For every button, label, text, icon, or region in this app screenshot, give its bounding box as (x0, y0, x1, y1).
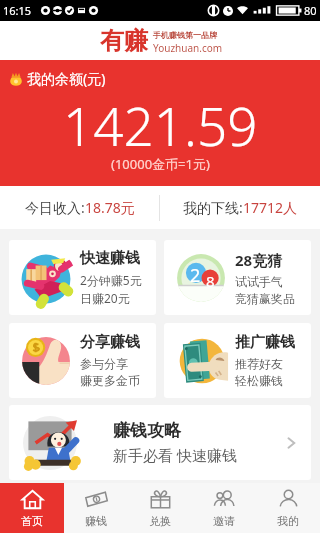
staticText: 日赚20元 (80, 290, 130, 306)
staticText: 推荐好友 (235, 356, 283, 371)
staticText: 2 (190, 263, 201, 288)
button[interactable]: 分享赚钱 (9, 323, 156, 398)
staticText: 8 (206, 271, 215, 291)
button[interactable]: 兑换 (128, 483, 192, 533)
staticText: 快速赚钱 (80, 249, 140, 268)
staticText: 分享赚钱 (80, 333, 140, 352)
staticText: 手机赚钱第一品牌 (153, 30, 217, 40)
staticText: 赚更多金币 (80, 373, 140, 388)
staticText: 有赚 (100, 26, 148, 56)
staticText: 竞猜赢奖品 (235, 291, 295, 306)
button[interactable]: 邀请 (192, 483, 256, 533)
button[interactable]: 首页 (0, 483, 64, 533)
button[interactable]: 赚钱攻略 (9, 405, 311, 480)
staticText: 兑换 (149, 514, 171, 528)
staticText: 今日收入: (25, 198, 85, 217)
staticText: 28竞猜 (235, 250, 283, 270)
button[interactable]: 我的 (256, 483, 320, 533)
staticText: 我的下线: (183, 198, 243, 217)
staticText: 我的 (277, 514, 299, 528)
staticText: Youzhuan.com (153, 41, 223, 55)
staticText: 推广赚钱 (235, 333, 295, 352)
staticText: 首页 (21, 514, 43, 528)
staticText: 邀请 (213, 514, 235, 528)
button[interactable]: 2 (164, 240, 311, 315)
staticText: 赚钱攻略 (113, 420, 181, 441)
staticText: 参与分享 (80, 356, 128, 371)
button[interactable]: 推广赚钱 (164, 323, 311, 398)
staticText: 1421.59 (63, 89, 258, 161)
staticText: 18.78元 (85, 198, 135, 217)
button[interactable]: 我的下线: (160, 186, 320, 229)
button[interactable]: 今日收入: (0, 186, 159, 229)
button[interactable]: 赚钱 (64, 483, 128, 533)
staticText: 2分钟赚5元 (80, 272, 142, 288)
staticText: 赚钱 (85, 514, 107, 528)
button[interactable]: 快速赚钱 (9, 240, 156, 315)
staticText: 轻松赚钱 (235, 373, 283, 388)
staticText: 17712人 (243, 198, 298, 217)
staticText: 80 (304, 3, 317, 18)
staticText: 16:15 (3, 3, 32, 18)
staticText: 试试手气 (235, 274, 283, 289)
staticText: 我的余额(元) (27, 69, 106, 88)
staticText: 新手必看 快速赚钱 (113, 445, 237, 465)
staticText: (10000金币=1元) (111, 155, 210, 173)
